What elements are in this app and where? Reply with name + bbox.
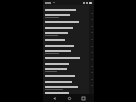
button[interactable] (43, 25, 89, 31)
button[interactable] (43, 19, 89, 25)
button[interactable] (43, 67, 89, 73)
button[interactable] (43, 91, 89, 94)
button[interactable]: Scroll index (89, 5, 94, 94)
button[interactable] (43, 61, 89, 67)
button[interactable]: Recent apps (79, 94, 87, 102)
button[interactable] (43, 31, 89, 37)
button[interactable] (43, 13, 89, 19)
button[interactable]: Back (50, 94, 58, 102)
button[interactable] (43, 85, 89, 91)
button[interactable] (43, 37, 89, 43)
button[interactable] (43, 43, 89, 49)
button[interactable] (43, 49, 89, 55)
button[interactable]: Home (65, 94, 73, 102)
button[interactable] (43, 7, 89, 13)
button[interactable] (43, 55, 89, 61)
button[interactable] (43, 73, 89, 79)
button[interactable] (43, 79, 89, 85)
